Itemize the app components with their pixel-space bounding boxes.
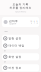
staticText: 3 [36,20,37,22]
button[interactable]: 버전 정보 [2,64,39,71]
staticText: 오늘의 기록 [12,3,28,6]
staticText: 알림 설정 [8,37,21,40]
staticText: 일 [31,22,32,24]
button[interactable]: 알림 설정 [2,35,39,42]
button[interactable]: 김하루 [0,17,41,27]
staticText: 화면 설정 [8,55,21,58]
staticText: 12 [30,20,32,22]
staticText: 기록 관리 [4,31,8,32]
staticText: 버전 정보 [8,66,21,69]
staticText: 4 [34,20,35,22]
staticText: 김하루 [9,19,18,23]
staticText: 오늘도 좋은 하루 [9,23,16,24]
staticText: 하루를 정리해요 [9,6,31,10]
button[interactable]: 데이터 백업 [2,42,39,49]
button[interactable]: 화면 설정 [2,53,39,60]
staticText: 매일 조금씩 기록해 보세요 [15,11,26,13]
staticText: 테마 [4,50,6,52]
staticText: 정보 [4,61,6,63]
staticText: 데이터 백업 [8,44,24,47]
